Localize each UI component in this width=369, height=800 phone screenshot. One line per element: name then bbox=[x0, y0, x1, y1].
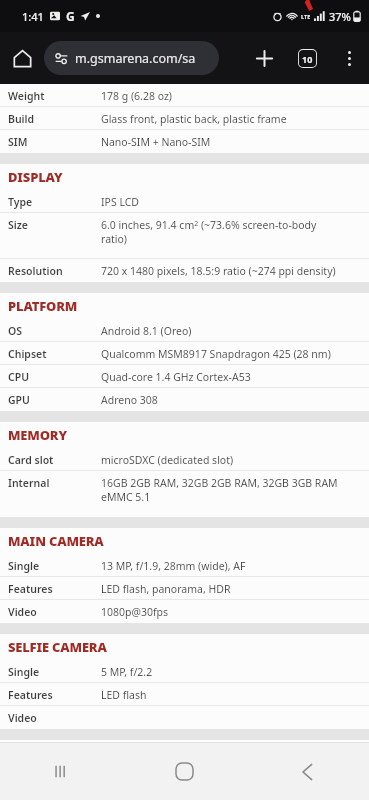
button[interactable]: Home bbox=[0, 32, 44, 84]
staticText: GPU bbox=[8, 393, 30, 407]
button[interactable]: Internal bbox=[0, 471, 369, 517]
staticText: Card slot bbox=[8, 453, 54, 467]
button[interactable]: DISPLAY bbox=[0, 164, 369, 190]
staticText: LTE bbox=[301, 13, 311, 20]
staticText: Type bbox=[8, 195, 33, 209]
staticText: Features bbox=[8, 582, 53, 596]
button[interactable]: Switch tabs, 10 open bbox=[285, 32, 329, 84]
button[interactable]: Home bbox=[123, 743, 246, 800]
staticText: LED flash bbox=[101, 688, 147, 702]
button[interactable]: Type bbox=[0, 190, 369, 213]
staticText: Weight bbox=[8, 89, 45, 103]
staticText: m.gsmarena.com/sa bbox=[75, 50, 196, 67]
staticText: Video bbox=[8, 711, 37, 725]
button[interactable]: m.gsmarena.com/sa bbox=[44, 41, 219, 75]
staticText: 6.0 inches, 91.4 cm2 (~73.6% screen-to-b… bbox=[101, 218, 317, 246]
button[interactable]: OS bbox=[0, 319, 369, 342]
staticText: Chipset bbox=[8, 347, 47, 361]
staticText: Adreno 308 bbox=[101, 393, 158, 407]
staticText: Build bbox=[8, 112, 35, 126]
staticText: 1080p@30fps bbox=[101, 605, 169, 619]
button[interactable]: Single bbox=[0, 554, 369, 577]
button[interactable]: New tab bbox=[243, 32, 285, 84]
staticText: IPS LCD bbox=[101, 195, 139, 209]
button[interactable]: SELFIE CAMERA bbox=[0, 634, 369, 660]
button[interactable]: Single bbox=[0, 660, 369, 683]
staticText: CPU bbox=[8, 370, 29, 384]
staticText: 1:41 bbox=[22, 9, 44, 24]
staticText: SIM bbox=[8, 135, 28, 149]
button[interactable]: SIM bbox=[0, 130, 369, 153]
button[interactable]: Video bbox=[0, 706, 369, 729]
button[interactable]: Card slot bbox=[0, 448, 369, 471]
staticText: DISPLAY bbox=[8, 168, 63, 186]
staticText: MAIN CAMERA bbox=[8, 532, 104, 550]
button[interactable]: MAIN CAMERA bbox=[0, 528, 369, 554]
button[interactable]: CPU bbox=[0, 365, 369, 388]
staticText: Single bbox=[8, 559, 40, 573]
staticText: 13 MP, f/1.9, 28mm (wide), AF bbox=[101, 559, 246, 573]
button[interactable]: Features bbox=[0, 683, 369, 706]
staticText: 5 MP, f/2.2 bbox=[101, 665, 153, 679]
staticText: PLATFORM bbox=[8, 297, 78, 315]
button[interactable]: Build bbox=[0, 107, 369, 130]
staticText: MEMORY bbox=[8, 426, 67, 444]
staticText: 10 bbox=[302, 53, 313, 65]
button[interactable]: Back bbox=[246, 743, 369, 800]
staticText: 16GB 2GB RAM, 32GB 2GB RAM, 32GB 3GB RAM… bbox=[101, 476, 338, 504]
staticText: 37% bbox=[329, 9, 351, 24]
staticText: Android 8.1 (Oreo) bbox=[101, 324, 192, 338]
staticText: SELFIE CAMERA bbox=[8, 638, 107, 656]
staticText: Video bbox=[8, 605, 37, 619]
staticText: microSDXC (dedicated slot) bbox=[101, 453, 234, 467]
staticText: Internal bbox=[8, 476, 50, 490]
staticText: Nano-SIM + Nano-SIM bbox=[101, 135, 211, 149]
button[interactable]: PLATFORM bbox=[0, 293, 369, 319]
button[interactable]: GPU bbox=[0, 388, 369, 411]
button[interactable]: Resolution bbox=[0, 259, 369, 282]
staticText: Features bbox=[8, 688, 53, 702]
button[interactable]: Size bbox=[0, 213, 369, 259]
button[interactable]: Weight bbox=[0, 84, 369, 107]
staticText: Quad-core 1.4 GHz Cortex-A53 bbox=[101, 370, 251, 384]
button[interactable]: Video bbox=[0, 600, 369, 623]
staticText: OS bbox=[8, 324, 23, 338]
button[interactable]: MEMORY bbox=[0, 422, 369, 448]
button[interactable]: More options bbox=[329, 32, 369, 84]
staticText: LED flash, panorama, HDR bbox=[101, 582, 231, 596]
staticText: Size bbox=[8, 218, 28, 232]
button[interactable]: Recent apps bbox=[0, 743, 123, 800]
staticText: Resolution bbox=[8, 264, 63, 278]
button[interactable]: Features bbox=[0, 577, 369, 600]
staticText: Qualcomm MSM8917 Snapdragon 425 (28 nm) bbox=[101, 347, 331, 361]
staticText: 720 x 1480 pixels, 18.5:9 ratio (~274 pp… bbox=[101, 264, 336, 278]
staticText: Glass front, plastic back, plastic frame bbox=[101, 112, 287, 126]
staticText: G bbox=[66, 8, 75, 24]
staticText: Single bbox=[8, 665, 40, 679]
staticText: 178 g (6.28 oz) bbox=[101, 89, 172, 103]
button[interactable]: Chipset bbox=[0, 342, 369, 365]
